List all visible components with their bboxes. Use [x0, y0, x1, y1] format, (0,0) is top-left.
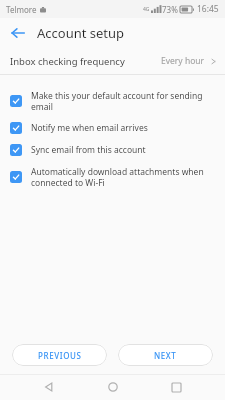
button[interactable]: Sync email from this account [0, 139, 225, 161]
staticText: Inbox checking frequency [10, 55, 125, 68]
button[interactable]: Make this your default account for sendi… [0, 85, 225, 117]
button[interactable]: NEXT [118, 344, 213, 366]
staticText: Automatically download attachments when … [31, 166, 213, 188]
button[interactable]: Back [5, 20, 31, 46]
staticText: 4G [143, 6, 150, 13]
button[interactable]: Home [98, 374, 128, 400]
staticText: 73% [162, 4, 178, 15]
button[interactable]: Recents [161, 374, 191, 400]
staticText: NEXT [154, 350, 177, 361]
button[interactable]: Back [34, 374, 64, 400]
staticText: Sync email from this account [31, 144, 146, 156]
staticText: Every hour [161, 55, 205, 67]
staticText: Telmore [6, 4, 37, 15]
button[interactable]: Notify me when email arrives [0, 117, 225, 139]
staticText: PREVIOUS [38, 350, 82, 361]
staticText: 16:45 [197, 3, 219, 15]
button[interactable]: Automatically download attachments when … [0, 161, 225, 193]
button[interactable]: PREVIOUS [12, 344, 107, 366]
staticText: Notify me when email arrives [31, 122, 148, 134]
button[interactable]: Inbox checking frequency [0, 48, 225, 74]
staticText: Make this your default account for sendi… [31, 90, 213, 112]
staticText: Account setup [37, 24, 125, 42]
